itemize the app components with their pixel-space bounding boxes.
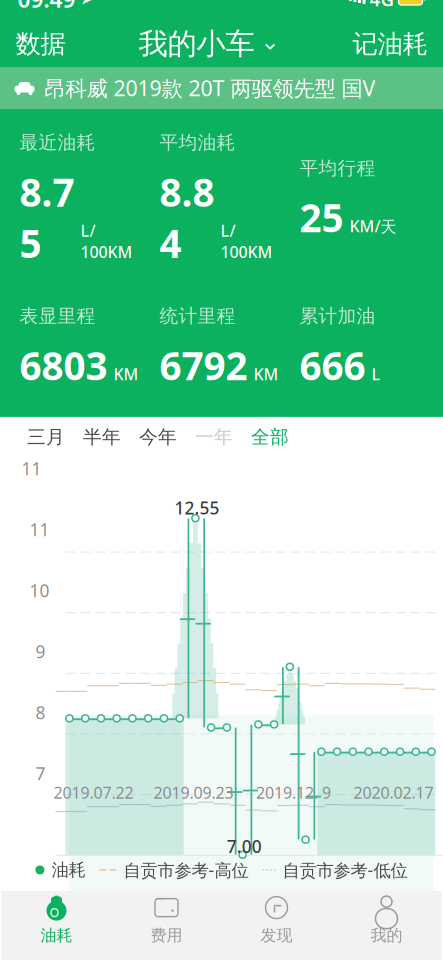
button[interactable]: 我的小车 <box>138 22 279 66</box>
staticText: KM <box>253 363 278 385</box>
staticText: 最近油耗 <box>19 131 95 154</box>
staticText: 费用 <box>150 926 182 945</box>
staticText: 8.75 <box>19 166 74 269</box>
button[interactable]: 半年 <box>74 420 130 454</box>
staticText: 我的 <box>370 926 402 945</box>
staticText: 6803 <box>19 340 107 391</box>
staticText: 昂科威 2019款 20T 两驱领先型 国V <box>44 74 375 102</box>
staticText: 2020.02.17 <box>353 782 433 803</box>
button[interactable]: 费用 <box>111 892 221 948</box>
staticText: 2019.07.22 <box>53 782 133 803</box>
staticText: ⌄ <box>260 29 279 54</box>
staticText: 记油耗 <box>352 28 427 60</box>
staticText: 平均行程 <box>299 157 375 180</box>
staticText: L/100KM <box>80 220 132 262</box>
button[interactable]: 今年 <box>130 420 186 454</box>
staticText: 8.84 <box>159 166 214 269</box>
staticText: KM <box>113 363 138 385</box>
button[interactable]: 我的 <box>331 892 441 948</box>
staticText: 自贡市参考-高位 <box>123 858 248 881</box>
staticText: 25 <box>299 192 343 243</box>
staticText: KM/天 <box>349 215 396 237</box>
staticText: 今年 <box>139 425 177 448</box>
staticText: 7 <box>35 762 45 785</box>
staticText: 平均油耗 <box>159 131 235 154</box>
button[interactable]: 一年 <box>186 420 242 454</box>
staticText: 666 <box>299 340 365 391</box>
staticText: 12.55 <box>174 496 219 519</box>
staticText: 统计里程 <box>159 305 235 328</box>
staticText: 7.00 <box>227 835 262 858</box>
staticText: 发现 <box>260 926 292 945</box>
staticText: 11 <box>29 518 49 541</box>
staticText: 表显里程 <box>19 305 95 328</box>
staticText: 一年 <box>195 425 233 448</box>
staticText: 我的小车 <box>138 26 254 62</box>
button[interactable]: 发现 <box>221 892 331 948</box>
staticText: 全部 <box>251 425 289 448</box>
staticText: 2019.12. 9 <box>256 782 331 803</box>
staticText: 2019.09.23 <box>153 782 233 803</box>
button[interactable]: 三月 <box>18 420 74 454</box>
staticText: 8 <box>35 701 45 724</box>
staticText: 油耗 <box>40 926 72 945</box>
staticText: 累计加油 <box>299 305 375 328</box>
staticText: 自贡市参考-低位 <box>283 858 408 881</box>
button[interactable]: 数据 <box>0 22 85 66</box>
button[interactable]: 昂科威 2019款 20T 两驱领先型 国V <box>0 67 443 109</box>
staticText: 6792 <box>159 340 247 391</box>
staticText: 半年 <box>83 425 121 448</box>
staticText: 三月 <box>27 425 65 448</box>
staticText: 11 <box>21 457 41 480</box>
staticText: 09:49 <box>17 0 75 14</box>
button[interactable]: 记油耗 <box>332 22 443 66</box>
staticText: 9 <box>35 640 45 663</box>
button[interactable]: 油耗 <box>1 892 111 948</box>
staticText: 数据 <box>15 28 65 60</box>
staticText: ➤ <box>75 0 92 7</box>
staticText: 10 <box>29 579 49 602</box>
staticText: L <box>371 363 380 385</box>
staticText: L/100KM <box>220 220 272 262</box>
staticText: 4G <box>369 0 394 11</box>
staticText: 油耗 <box>51 859 85 881</box>
button[interactable]: 全部 <box>242 420 298 454</box>
